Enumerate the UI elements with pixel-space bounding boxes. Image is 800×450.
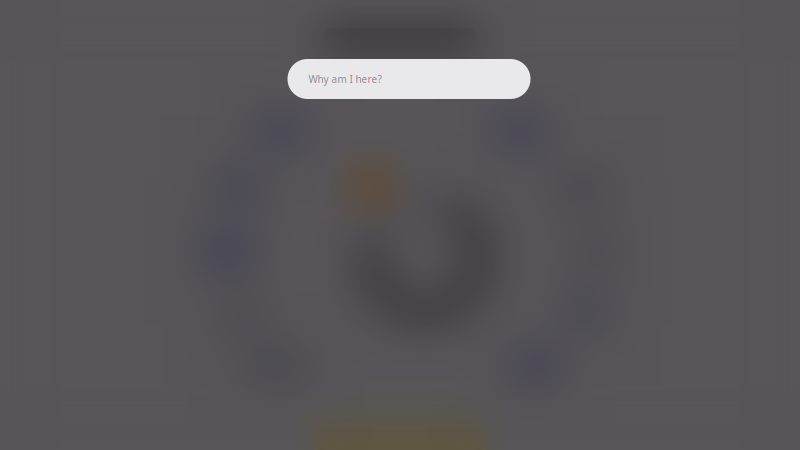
button[interactable]: Why am I here? — [287, 59, 530, 99]
staticText: Why am I here? — [308, 72, 381, 86]
